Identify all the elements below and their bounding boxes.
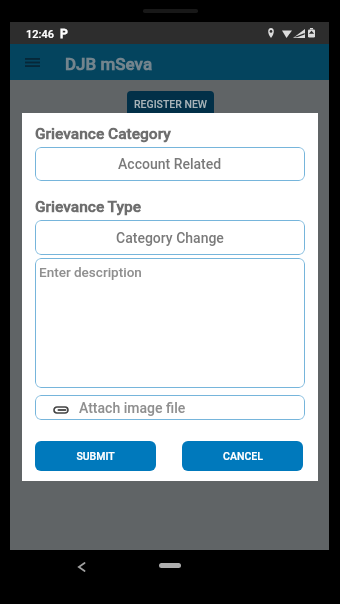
button[interactable]: REGISTER NEW — [127, 91, 214, 117]
staticText: SUBMIT — [76, 450, 115, 462]
staticText: Attach image file — [79, 400, 186, 416]
button[interactable]: SUBMIT — [35, 441, 156, 471]
staticText: Grievance Category — [35, 125, 171, 143]
staticText: Grievance Type — [35, 198, 141, 216]
staticText: Account Related — [118, 156, 222, 172]
staticText: DJB mSeva — [65, 54, 153, 74]
staticText: Enter description — [39, 264, 142, 280]
staticText: Category Change — [116, 230, 224, 246]
button[interactable]: CANCEL — [182, 441, 303, 471]
staticText: REGISTER NEW — [134, 98, 208, 110]
staticText: 12:46 — [26, 28, 54, 41]
button[interactable]: Attach image file — [35, 395, 305, 420]
button[interactable]: Category Change — [35, 220, 305, 255]
button[interactable]: Enter description — [35, 258, 305, 388]
button[interactable]: Back — [72, 557, 92, 577]
staticText: CANCEL — [223, 450, 263, 462]
button[interactable]: Account Related — [35, 147, 305, 181]
button[interactable]: Home — [159, 563, 181, 568]
staticText: P — [60, 27, 68, 41]
button[interactable]: Open navigation drawer — [25, 58, 40, 67]
